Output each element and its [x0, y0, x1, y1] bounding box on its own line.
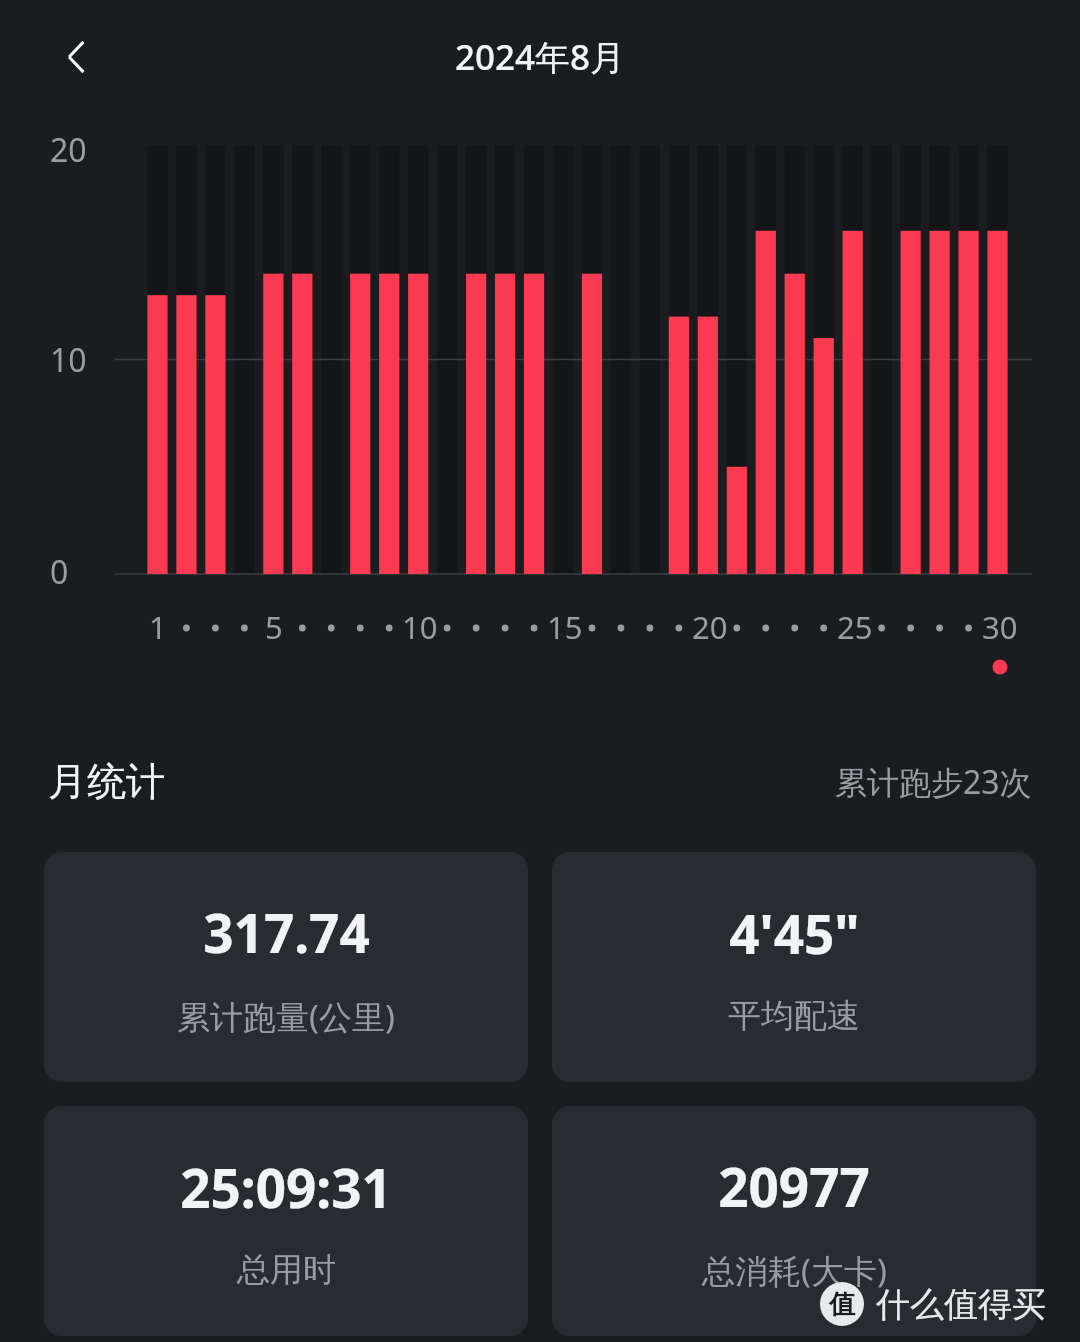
- staticText: 10: [50, 338, 87, 382]
- staticText: 什么值得买: [876, 1283, 1046, 1326]
- staticText: 10: [402, 606, 438, 648]
- staticText: 累计跑步23次: [835, 760, 1032, 804]
- staticText: 15: [547, 606, 583, 648]
- staticText: 20: [692, 606, 728, 648]
- button[interactable]: 4'45": [552, 852, 1036, 1082]
- staticText: 20977: [718, 1150, 870, 1222]
- staticText: 平均配速: [728, 995, 860, 1037]
- staticText: 值: [829, 1288, 855, 1321]
- button[interactable]: 317.74: [44, 852, 528, 1082]
- staticText: 30: [982, 606, 1018, 648]
- button[interactable]: [0, 0, 1080, 1342]
- staticText: 总消耗(大卡): [702, 1248, 887, 1293]
- staticText: 总用时: [237, 1249, 336, 1291]
- staticText: 5: [265, 606, 283, 648]
- staticText: 2024年8月: [455, 33, 626, 81]
- staticText: 4'45": [729, 897, 860, 969]
- button[interactable]: 25:09:31: [44, 1106, 528, 1336]
- staticText: 20: [50, 128, 87, 172]
- button[interactable]: Back: [46, 26, 108, 88]
- button[interactable]: 20977: [552, 1106, 1036, 1336]
- staticText: 25: [837, 606, 873, 648]
- staticText: 25:09:31: [180, 1151, 392, 1223]
- staticText: 0: [50, 550, 69, 594]
- staticText: 317.74: [203, 896, 370, 968]
- staticText: 1: [149, 606, 167, 648]
- staticText: 累计跑量(公里): [177, 994, 395, 1039]
- staticText: 月统计: [48, 757, 165, 806]
